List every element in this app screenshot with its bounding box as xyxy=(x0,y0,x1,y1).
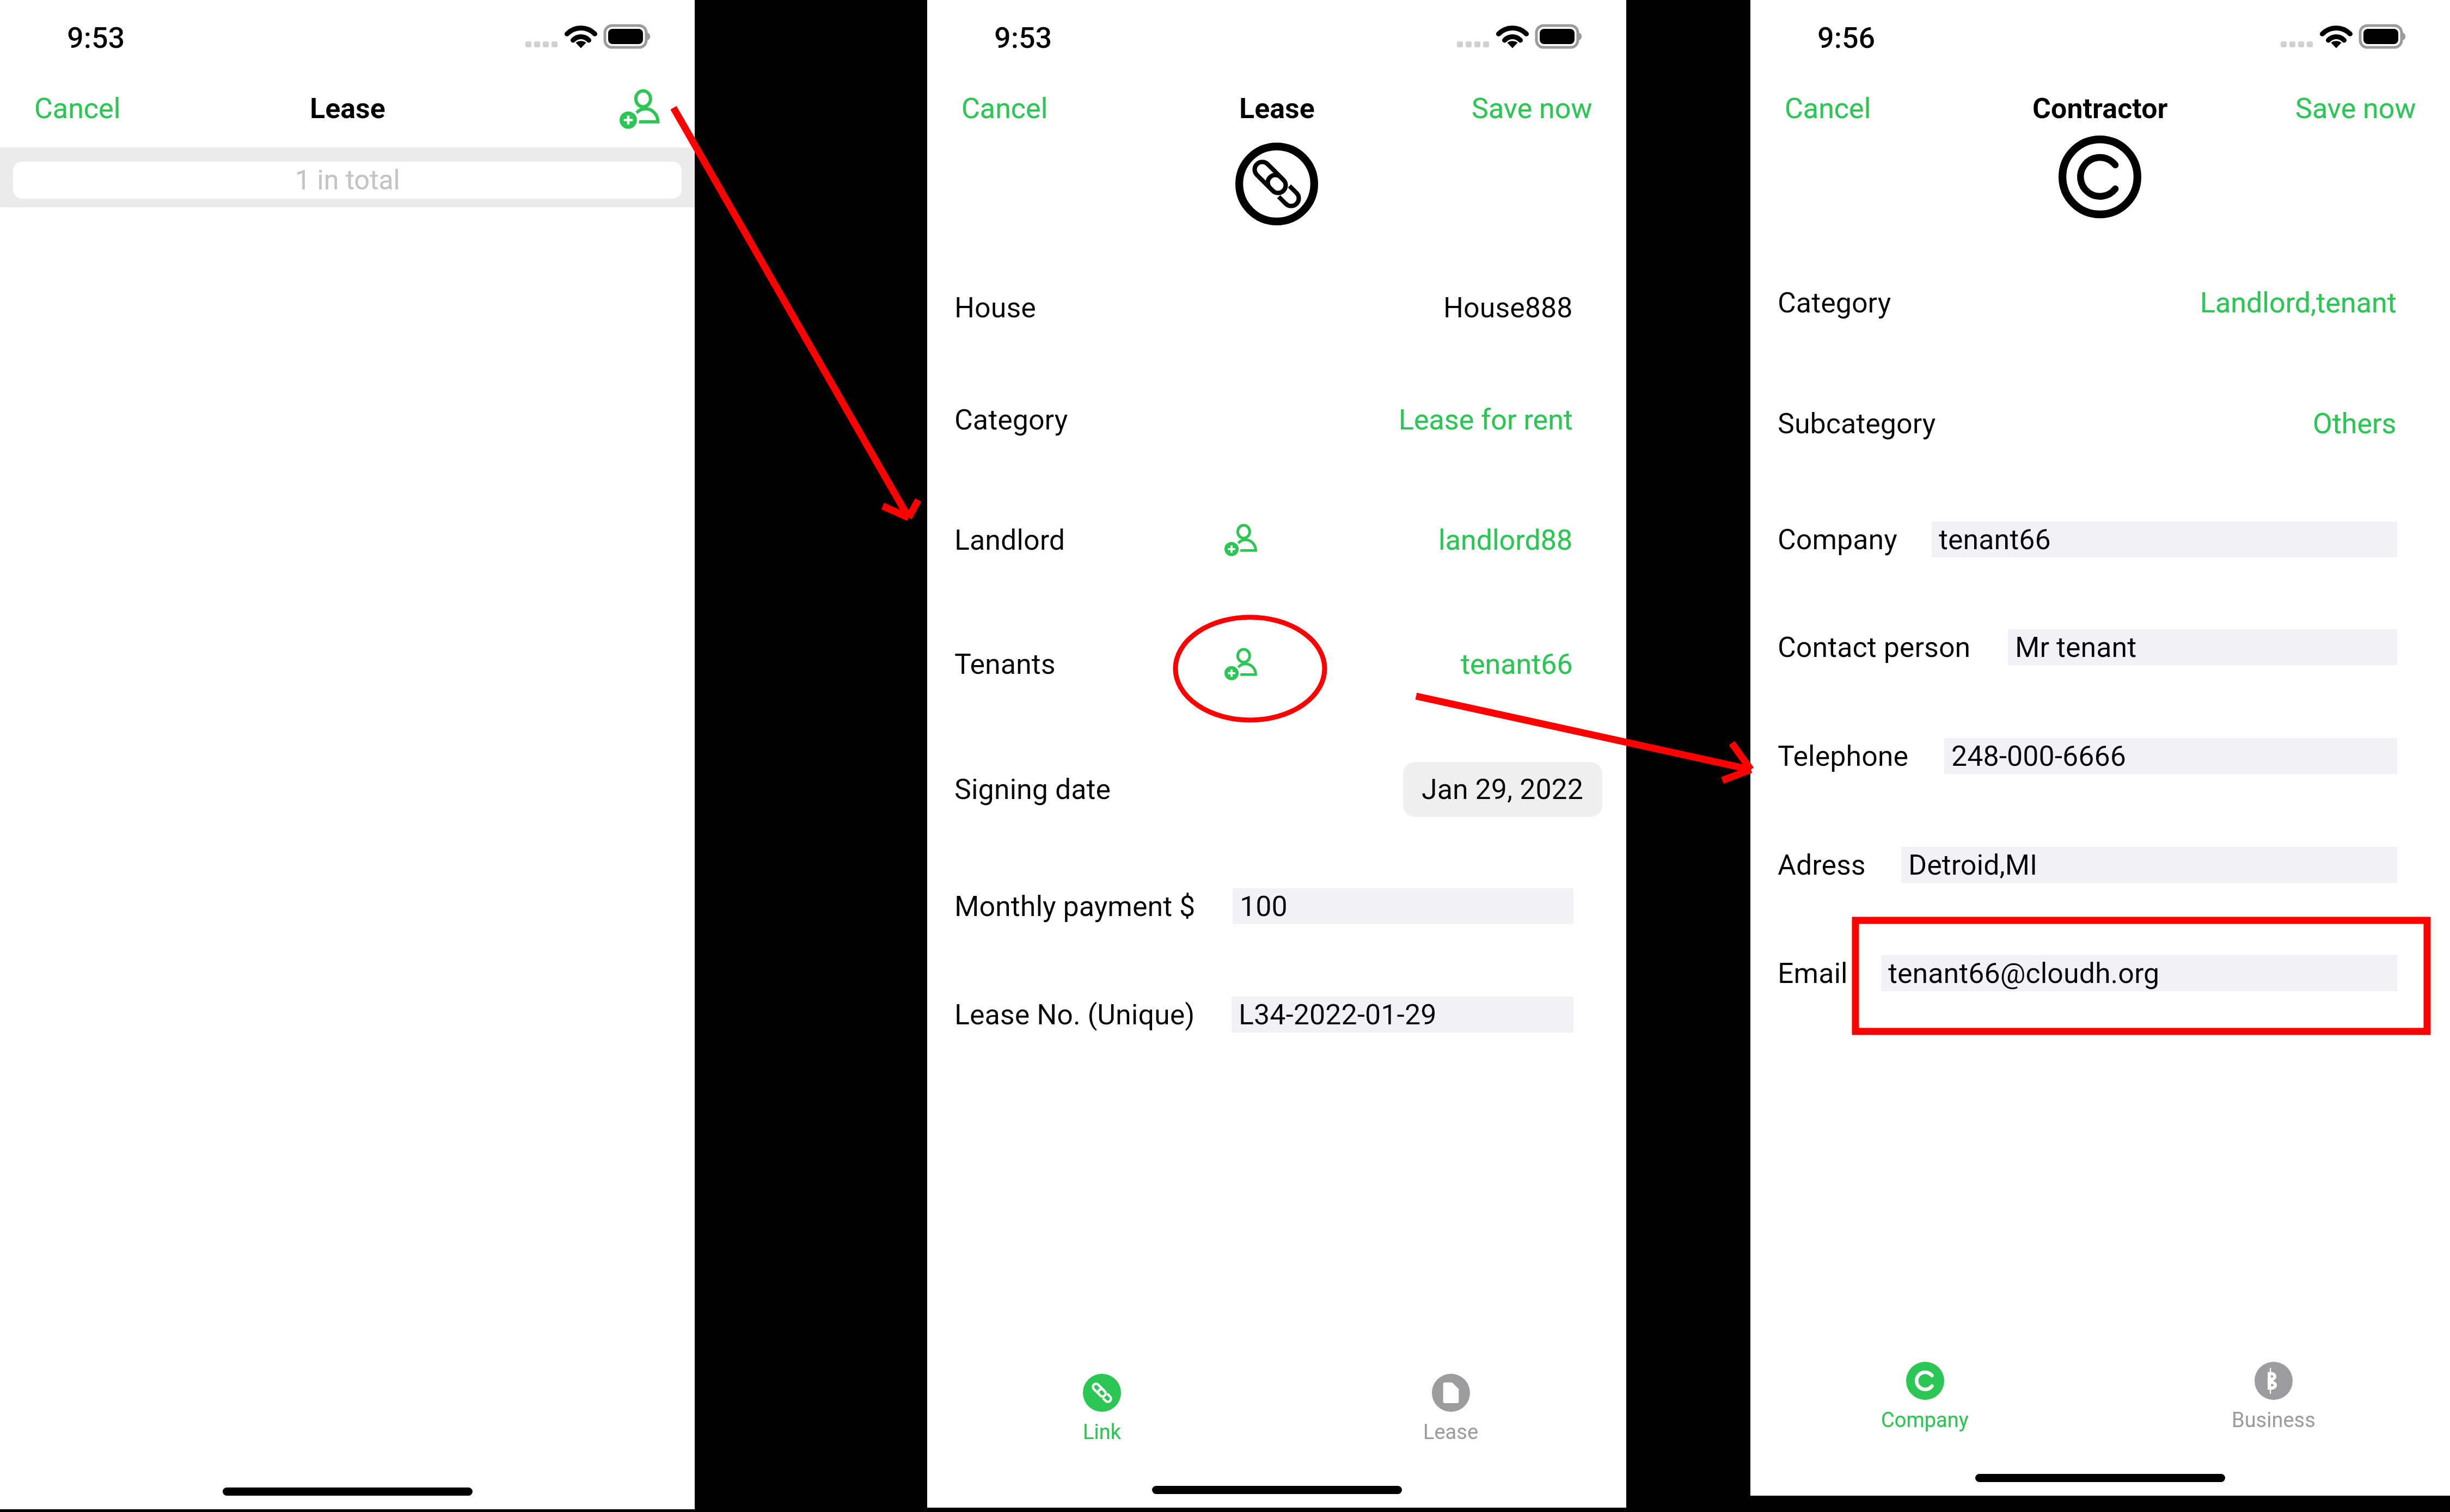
button[interactable]: Lease xyxy=(1391,1374,1511,1456)
staticText: Category xyxy=(954,403,1068,437)
staticText: Subcategory xyxy=(1778,407,1936,440)
button[interactable]: tenant66@cloudh.org xyxy=(1881,955,2397,991)
button[interactable]: Business xyxy=(2214,1362,2333,1445)
staticText: Monthly payment $ xyxy=(954,890,1196,923)
staticText: 1 in total xyxy=(295,164,400,196)
staticText: Lease for rent xyxy=(1399,403,1573,437)
button[interactable]: Jan 29, 2022 xyxy=(1403,762,1602,817)
button[interactable]: Add Landlord xyxy=(1217,517,1263,563)
staticText: 9:53 xyxy=(994,21,1052,55)
staticText: Signing date xyxy=(954,773,1111,806)
staticText: Link xyxy=(1083,1420,1121,1445)
staticText: Others xyxy=(2313,407,2397,440)
staticText: Cancel xyxy=(1785,92,1871,125)
staticText: Cancel xyxy=(961,92,1048,125)
staticText: Adress xyxy=(1778,849,1866,882)
button[interactable]: tenant66 xyxy=(1932,521,2397,557)
button[interactable]: Category xyxy=(1750,262,2450,343)
button[interactable]: L34-2022-01-29 xyxy=(1232,997,1573,1032)
staticText: Save now xyxy=(1472,92,1592,125)
staticText: tenant66@cloudh.org xyxy=(1888,957,2160,990)
staticText: Tenants xyxy=(954,648,1056,681)
staticText: Lease xyxy=(310,92,385,125)
staticText: Cancel xyxy=(34,92,121,125)
button[interactable]: Save now xyxy=(1438,76,1626,141)
button[interactable]: 248-000-6666 xyxy=(1944,738,2397,774)
staticText: Company xyxy=(1778,523,1897,556)
button[interactable]: Link xyxy=(1042,1374,1162,1456)
staticText: 248-000-6666 xyxy=(1951,740,2126,773)
button[interactable]: Cancel xyxy=(927,78,1082,139)
button[interactable]: Save now xyxy=(2262,76,2450,141)
staticText: Landlord,tenant xyxy=(2200,286,2397,319)
staticText: Lease xyxy=(1423,1420,1479,1445)
staticText: Jan 29, 2022 xyxy=(1422,773,1584,806)
button[interactable]: Company xyxy=(1865,1362,1984,1445)
staticText: Company xyxy=(1881,1408,1969,1433)
staticText: tenant66 xyxy=(1461,648,1573,681)
staticText: Lease xyxy=(1239,92,1315,125)
button[interactable]: Add Tenants xyxy=(1217,641,1263,687)
staticText: Email xyxy=(1778,957,1848,990)
staticText: Contact person xyxy=(1778,631,1971,664)
staticText: House888 xyxy=(1443,291,1573,324)
staticText: Lease No. (Unique) xyxy=(954,998,1195,1031)
staticText: Telephone xyxy=(1778,740,1909,773)
staticText: 100 xyxy=(1240,890,1288,923)
button[interactable]: House xyxy=(927,267,1626,348)
staticText: Contractor xyxy=(2032,92,2168,125)
button[interactable]: Cancel xyxy=(0,78,155,139)
button[interactable]: 1 in total xyxy=(13,162,682,199)
button[interactable]: Mr tenant xyxy=(2008,629,2397,665)
staticText: Mr tenant xyxy=(2015,631,2137,664)
button[interactable]: Landlord xyxy=(927,499,1626,581)
staticText: 9:56 xyxy=(1817,21,1876,55)
button[interactable]: Tenants xyxy=(927,623,1626,705)
button[interactable]: Add person xyxy=(603,75,675,146)
button[interactable]: Subcategory xyxy=(1750,383,2450,464)
staticText: Landlord xyxy=(954,524,1065,557)
button[interactable]: Detroid,MI xyxy=(1901,847,2397,883)
other: Link xyxy=(1235,143,1318,225)
button[interactable]: Cancel xyxy=(1750,78,1906,139)
staticText: 9:53 xyxy=(67,21,125,55)
staticText: Detroid,MI xyxy=(1908,849,2038,882)
staticText: tenant66 xyxy=(1939,523,2051,556)
staticText: Category xyxy=(1778,286,1891,319)
staticText: L34-2022-01-29 xyxy=(1239,998,1437,1031)
button[interactable]: Category xyxy=(927,379,1626,460)
other: Copyright xyxy=(2059,136,2141,218)
staticText: House xyxy=(954,291,1036,324)
staticText: landlord88 xyxy=(1438,524,1573,557)
staticText: Business xyxy=(2232,1408,2316,1433)
staticText: Save now xyxy=(2295,92,2416,125)
button[interactable]: 100 xyxy=(1233,888,1573,924)
